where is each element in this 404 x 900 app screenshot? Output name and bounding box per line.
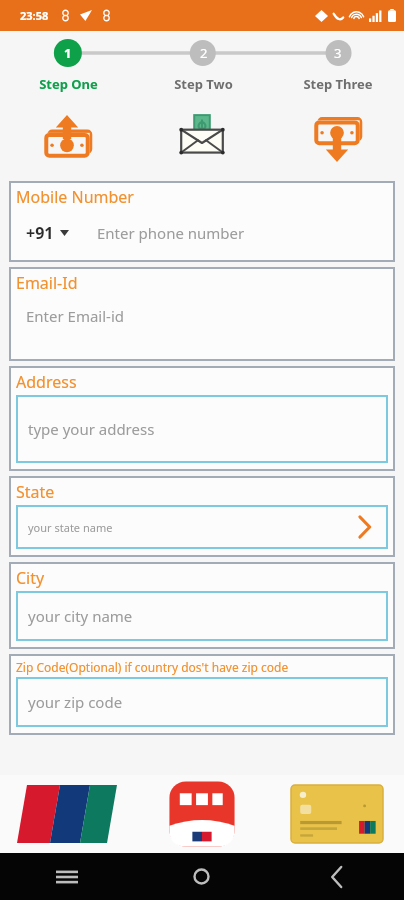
button[interactable]: 3 [271,31,404,99]
button[interactable]: State [9,476,395,557]
staticText: 3 [334,44,342,62]
button[interactable]: Choose state [352,515,376,539]
button[interactable]: Receive money [269,99,404,177]
staticText: Step One [39,75,98,93]
button[interactable]: Gold card [269,775,404,853]
button[interactable]: Home [134,853,269,900]
staticText: 23:58 [20,8,49,23]
button[interactable]: City [9,562,395,649]
button[interactable]: your city name [16,591,388,641]
button[interactable]: UnionPay card [0,775,134,853]
staticText: Zip Code(Optional) if country dos't have… [16,659,289,675]
button[interactable]: your state name [16,505,388,549]
staticText: Enter Email-id [26,306,125,326]
button[interactable]: type your address [16,395,388,463]
button[interactable]: Enter Email-id [16,294,388,356]
staticText: your state name [28,520,113,535]
button[interactable]: Back [269,853,404,900]
staticText: Email-Id [16,272,78,294]
staticText: 1 [64,44,72,62]
button[interactable]: Address [9,366,395,471]
button[interactable]: +91 [16,222,75,244]
staticText: type your address [28,419,155,439]
button[interactable]: 2 [136,31,271,99]
staticText: Address [16,371,77,393]
button[interactable]: 1 [0,31,136,99]
staticText: +91 [26,222,54,244]
button[interactable]: Send money [0,99,134,177]
staticText: State [16,481,55,503]
staticText: your city name [28,606,133,626]
staticText: Step Two [174,75,233,93]
button[interactable]: Zip Code(Optional) if country dos't have… [9,654,395,735]
staticText: Mobile Number [16,186,134,208]
staticText: your zip code [28,692,123,712]
staticText: 2 [200,44,208,62]
button[interactable]: your zip code [16,677,388,727]
button[interactable]: QuickPass [134,775,269,853]
button[interactable]: Mobile Number [9,181,395,262]
staticText: Step Three [303,75,373,93]
button[interactable]: Money in envelope [134,99,269,177]
button[interactable]: Recent apps [0,853,134,900]
staticText: Enter phone number [97,223,245,243]
button[interactable]: Email-Id [9,267,395,361]
staticText: City [16,567,45,589]
